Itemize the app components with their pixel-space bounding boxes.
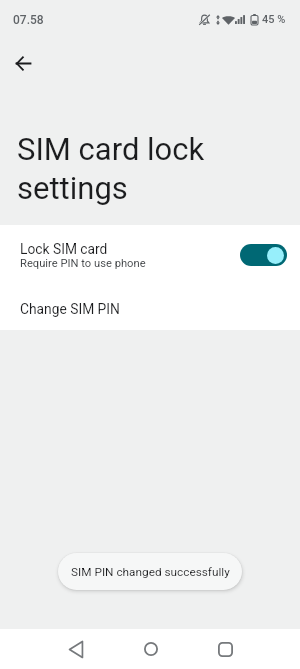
button[interactable]: SIM PIN changed successfully xyxy=(58,553,242,590)
button[interactable]: Lock SIM card xyxy=(0,225,300,284)
staticText: Require PIN to use phone xyxy=(20,257,146,270)
button[interactable]: Home xyxy=(113,629,188,669)
staticText: 45 % xyxy=(262,13,286,26)
staticText: Lock SIM card xyxy=(20,241,108,257)
button[interactable]: Back xyxy=(7,47,40,80)
button[interactable]: Lock SIM card xyxy=(240,244,287,266)
staticText: SIM PIN changed successfully xyxy=(71,565,230,579)
staticText: Change SIM PIN xyxy=(20,301,120,317)
staticText: 07.58 xyxy=(13,13,44,27)
button[interactable]: Back xyxy=(38,629,113,669)
button[interactable]: Recent apps xyxy=(188,629,263,669)
staticText: SIM card lock settings xyxy=(17,131,205,206)
button[interactable]: Change SIM PIN xyxy=(0,286,300,332)
